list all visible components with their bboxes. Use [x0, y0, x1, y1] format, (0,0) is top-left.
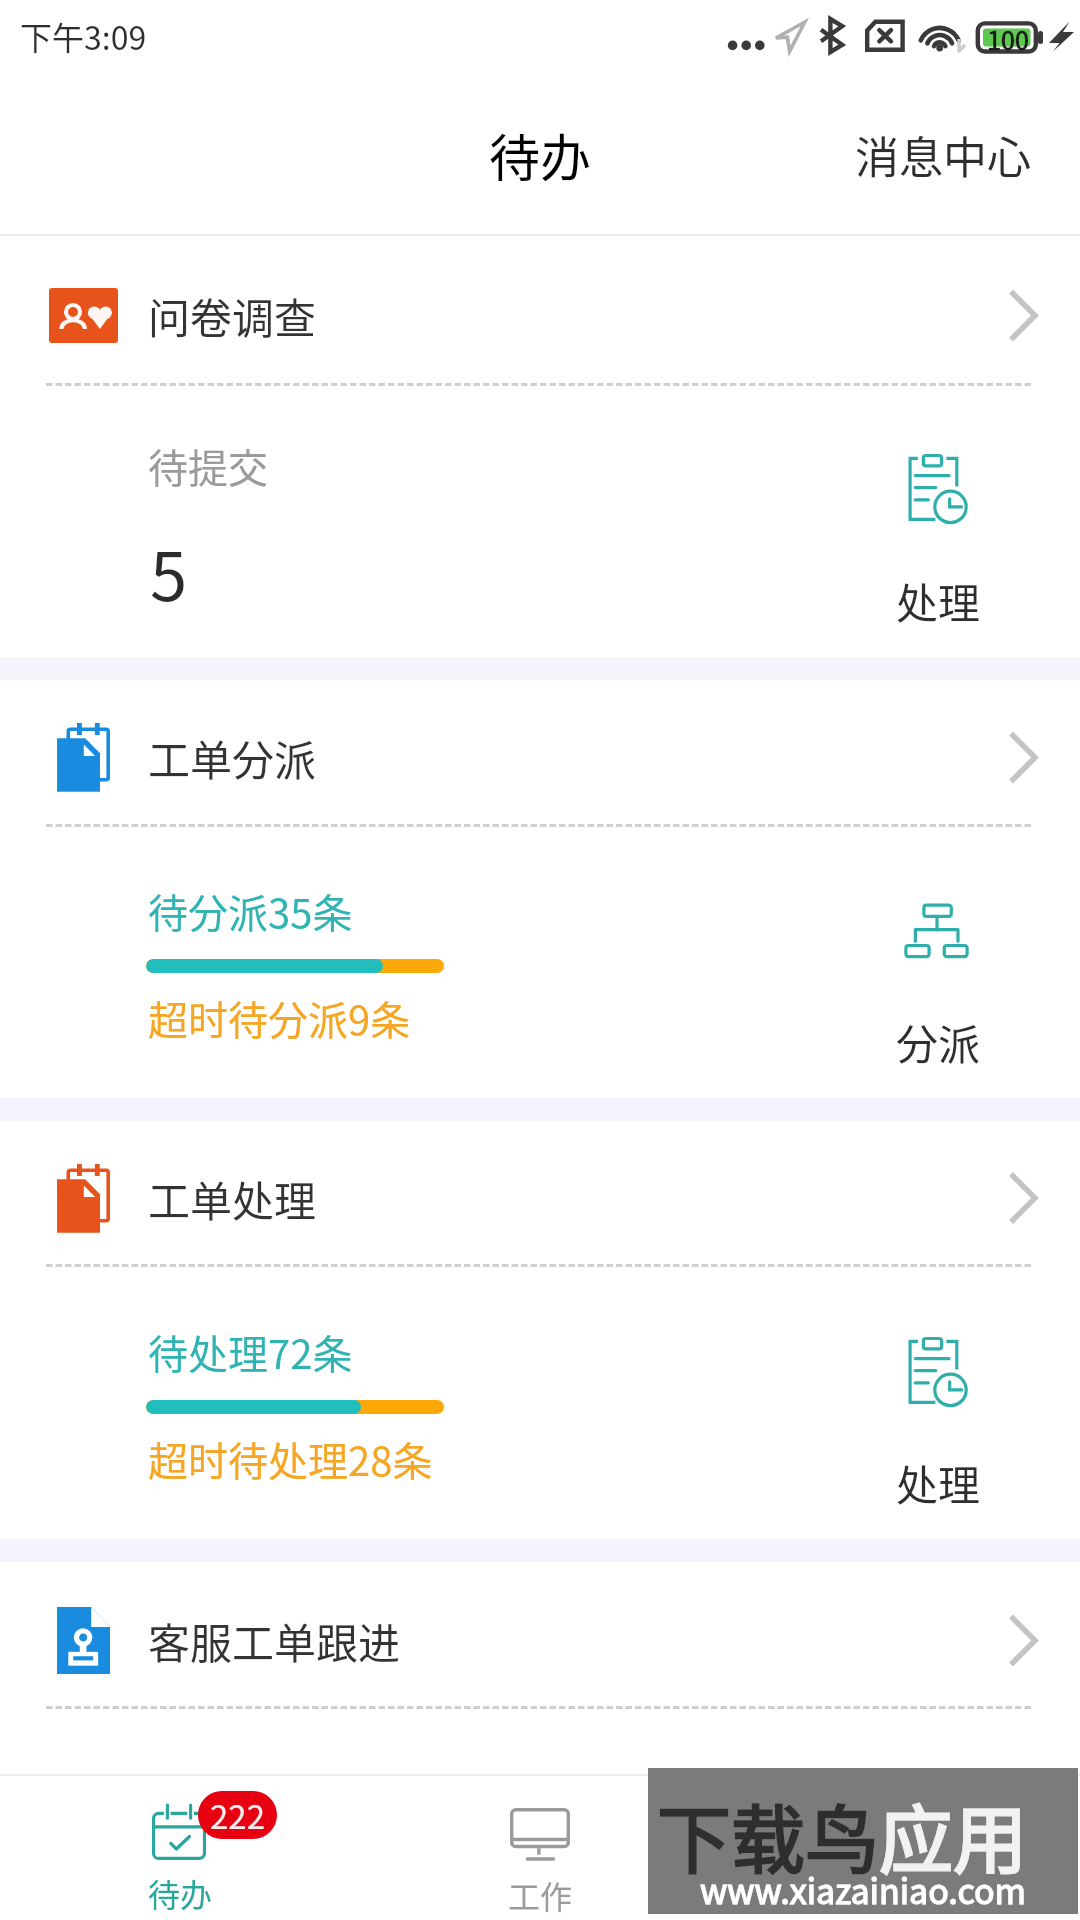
button[interactable]: 工作: [450, 1776, 630, 1920]
button[interactable]: 消息中心: [833, 115, 1053, 195]
staticText: 应用: [879, 1781, 1027, 1888]
staticText: 处理: [896, 1452, 981, 1513]
button[interactable]: 问卷调查: [0, 248, 1080, 383]
button[interactable]: 处理: [860, 428, 1016, 622]
button[interactable]: 222: [90, 1776, 270, 1920]
staticText: 工作: [508, 1872, 573, 1918]
button[interactable]: 待办: [432, 113, 648, 197]
staticText: 222: [210, 1791, 265, 1839]
staticText: 工单处理: [148, 1168, 317, 1229]
staticText: 超时待分派9条: [148, 989, 411, 1047]
staticText: 问卷调查: [148, 285, 317, 346]
staticText: www.xiazainiao.com: [656, 1865, 1070, 1914]
staticText: 待办: [148, 1870, 213, 1916]
staticText: 待办: [489, 118, 592, 192]
button[interactable]: 分派: [860, 870, 1016, 1063]
button[interactable]: 工单处理: [0, 1132, 1080, 1264]
button[interactable]: 客服工单跟进: [0, 1575, 1080, 1706]
staticText: 处理: [896, 570, 981, 631]
button[interactable]: 处理: [860, 1311, 1016, 1504]
staticText: 待提交: [148, 437, 268, 495]
staticText: 100: [985, 21, 1031, 57]
staticText: 消息中心: [855, 123, 1031, 187]
staticText: 工单分派: [148, 727, 317, 788]
staticText: 分派: [896, 1011, 981, 1072]
staticText: 5: [150, 523, 188, 620]
staticText: 下午3:09: [20, 13, 147, 59]
staticText: 下载鸟: [657, 1781, 879, 1888]
button[interactable]: 工单分派: [0, 691, 1080, 824]
staticText: 待处理72条: [148, 1323, 353, 1381]
staticText: 超时待处理28条: [148, 1430, 433, 1488]
staticText: 客服工单跟进: [148, 1610, 401, 1671]
staticText: 待分派35条: [148, 882, 353, 940]
button[interactable]: 我的: [810, 1776, 990, 1920]
